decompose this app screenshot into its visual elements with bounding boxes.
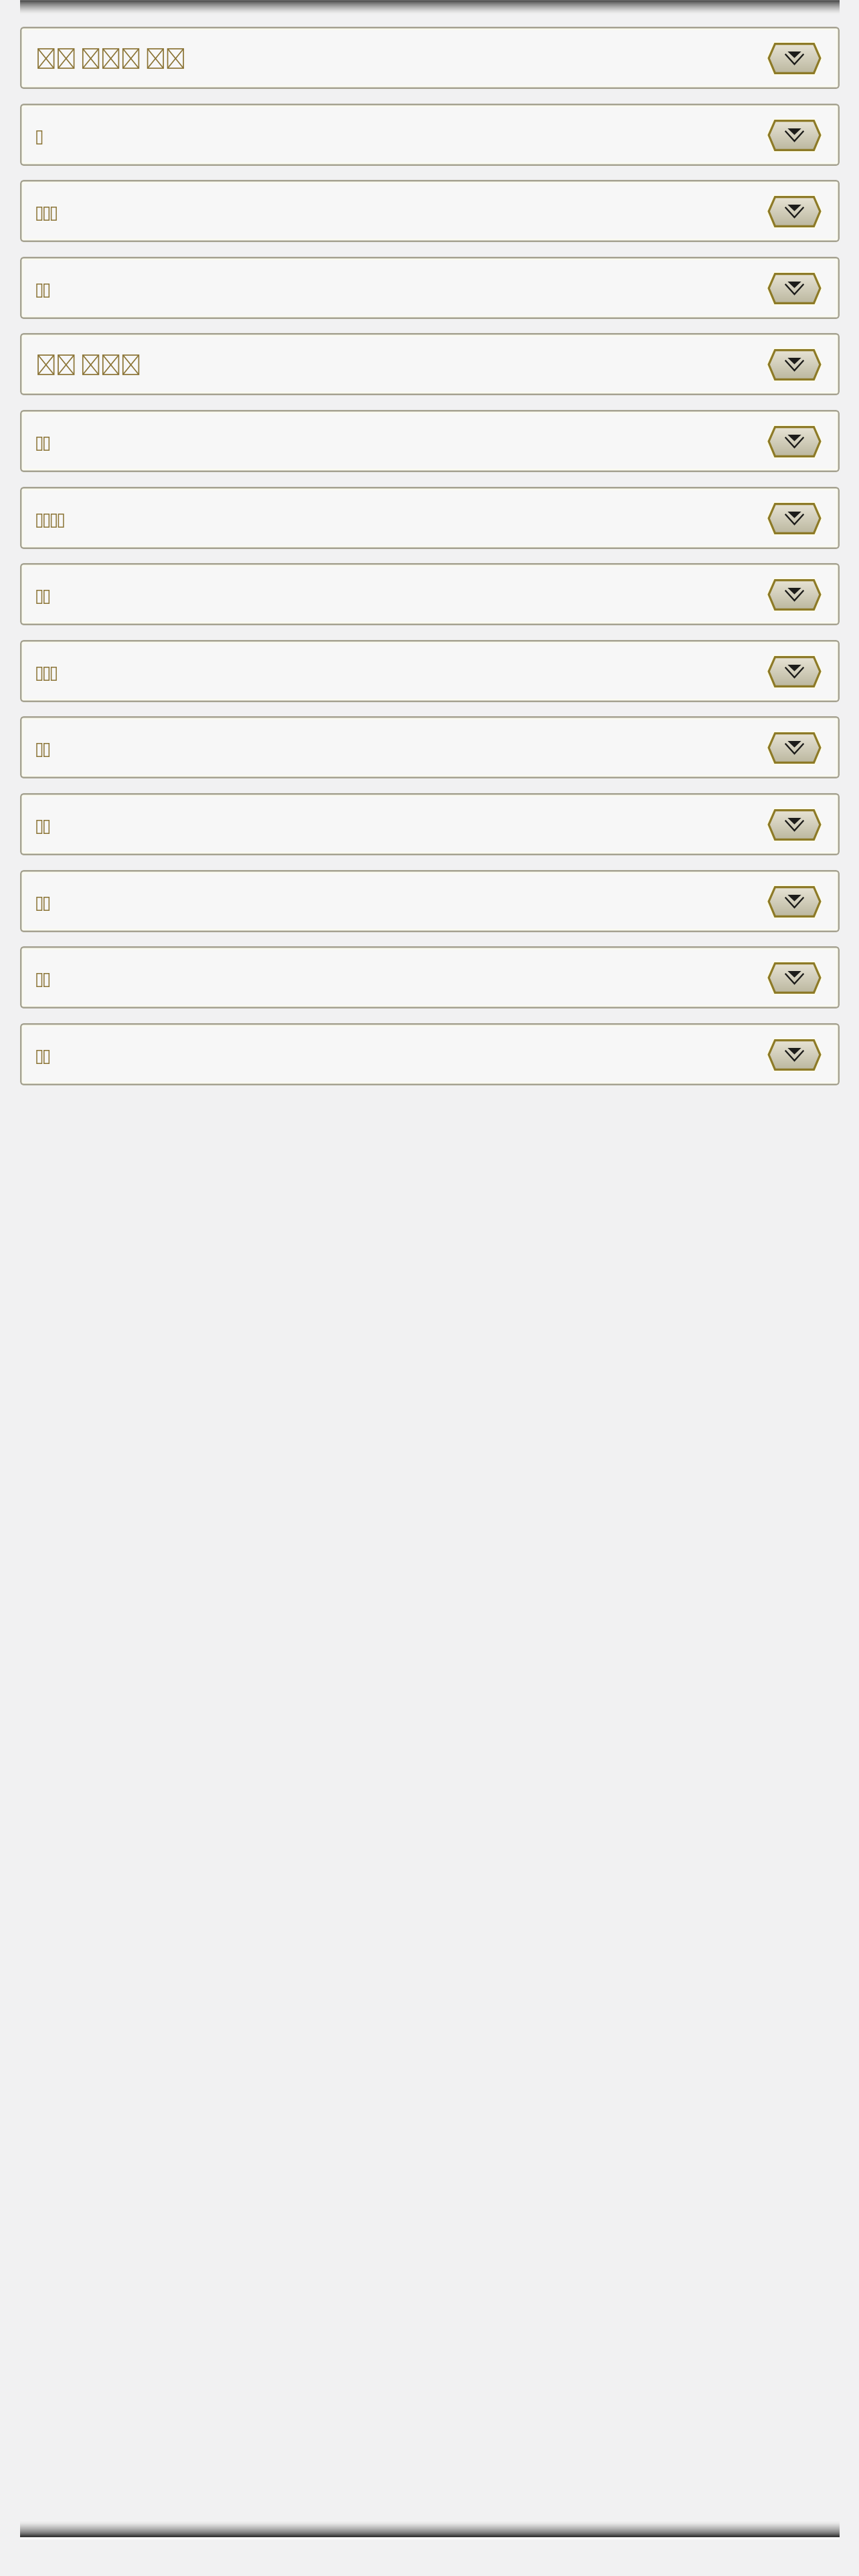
- button[interactable]: Expand: [20, 410, 840, 472]
- button[interactable]: Expand: [768, 425, 821, 457]
- button[interactable]: Expand: [768, 578, 821, 611]
- button[interactable]: Expand: [768, 42, 821, 74]
- button[interactable]: Expand: [20, 793, 840, 855]
- button[interactable]: Expand: [768, 119, 821, 151]
- button[interactable]: Expand: [20, 180, 840, 242]
- button[interactable]: Expand: [20, 1023, 840, 1085]
- button[interactable]: Expand: [20, 333, 840, 395]
- button[interactable]: Expand: [20, 563, 840, 625]
- button[interactable]: Expand: [20, 946, 840, 1008]
- button[interactable]: Expand: [768, 502, 821, 534]
- button[interactable]: Expand: [20, 257, 840, 319]
- button[interactable]: Expand: [768, 348, 821, 381]
- button[interactable]: Expand: [768, 809, 821, 841]
- button[interactable]: Expand: [20, 487, 840, 549]
- button[interactable]: Expand: [768, 655, 821, 687]
- button[interactable]: Expand: [768, 962, 821, 994]
- button[interactable]: Expand: [20, 716, 840, 778]
- button[interactable]: Expand: [768, 195, 821, 227]
- button[interactable]: Expand: [20, 640, 840, 702]
- button[interactable]: Expand: [768, 885, 821, 918]
- button[interactable]: Expand: [768, 1039, 821, 1071]
- button[interactable]: Expand: [20, 870, 840, 932]
- button[interactable]: Expand: [20, 104, 840, 166]
- button[interactable]: Expand: [768, 732, 821, 764]
- button[interactable]: Expand: [768, 272, 821, 304]
- button[interactable]: Expand: [20, 27, 840, 89]
